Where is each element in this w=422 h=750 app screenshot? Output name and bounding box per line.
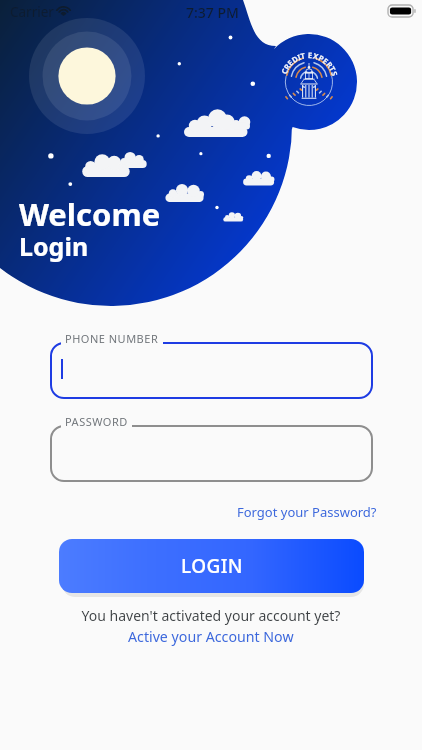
button[interactable]: Active your Account Now [0, 627, 422, 646]
button[interactable]: Forgot your Password? [237, 501, 377, 523]
staticText: Login [19, 229, 89, 263]
staticText: Welcome [19, 193, 161, 235]
staticText: Forgot your Password? [237, 503, 377, 521]
staticText: Carrier [10, 3, 54, 21]
staticText: PHONE NUMBER [65, 331, 159, 346]
staticText: Active your Account Now [128, 627, 294, 646]
staticText: PASSWORD [65, 414, 128, 429]
button[interactable]: LOGIN [59, 539, 364, 593]
staticText: 7:37 PM [186, 3, 239, 22]
staticText: You haven't activated your account yet? [0, 606, 422, 625]
staticText: LOGIN [181, 553, 243, 579]
